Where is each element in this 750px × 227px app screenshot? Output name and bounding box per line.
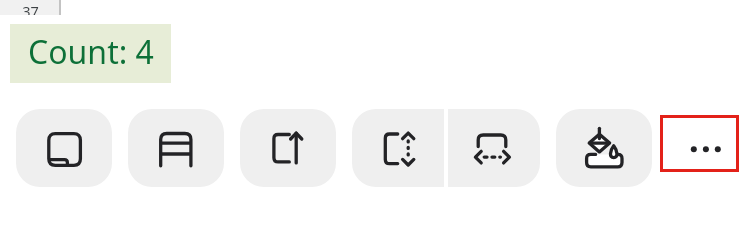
button[interactable]: Resize column xyxy=(448,109,540,187)
button[interactable]: Count: 4 xyxy=(10,24,171,83)
button[interactable]: Resize row xyxy=(352,109,444,187)
button[interactable]: Insert note xyxy=(16,109,112,187)
button[interactable]: Freeze rows xyxy=(128,109,224,187)
staticText: 37 xyxy=(1,1,59,15)
button[interactable]: More options xyxy=(663,118,736,169)
staticText: Count: 4 xyxy=(28,30,154,74)
button[interactable]: Insert row above xyxy=(240,109,336,187)
button[interactable]: Alternating colours xyxy=(556,109,652,187)
